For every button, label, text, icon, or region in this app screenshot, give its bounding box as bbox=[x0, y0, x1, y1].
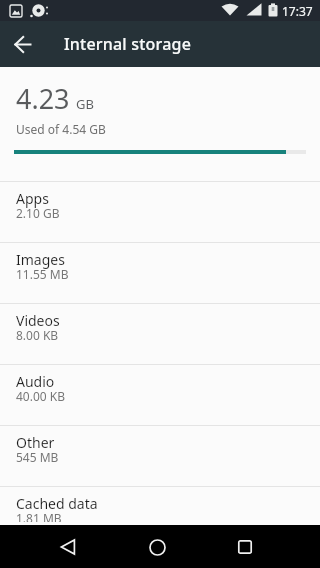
staticText: 8.00 KB bbox=[16, 327, 59, 343]
staticText: 4.23 bbox=[16, 80, 70, 117]
button[interactable] bbox=[53, 532, 83, 562]
staticText: Videos bbox=[16, 311, 60, 330]
button[interactable]: Cached data bbox=[0, 487, 320, 525]
staticText: Cached data bbox=[16, 494, 98, 513]
staticText: 545 MB bbox=[16, 449, 59, 465]
button[interactable]: Videos bbox=[0, 304, 320, 364]
staticText: 1.81 MB bbox=[16, 510, 62, 522]
button[interactable]: Images bbox=[0, 243, 320, 303]
button[interactable]: Apps bbox=[0, 182, 320, 242]
button[interactable]: Other bbox=[0, 426, 320, 486]
staticText: Internal storage bbox=[64, 33, 192, 55]
button[interactable] bbox=[230, 532, 260, 562]
button[interactable] bbox=[7, 28, 39, 60]
staticText: Images bbox=[16, 250, 65, 269]
staticText: Apps bbox=[16, 189, 49, 208]
button[interactable]: Audio bbox=[0, 365, 320, 425]
staticText: 17:37 bbox=[282, 3, 313, 19]
staticText: 11.55 MB bbox=[16, 266, 69, 282]
staticText: Other bbox=[16, 433, 55, 452]
button[interactable] bbox=[142, 532, 172, 562]
staticText: 2.10 GB bbox=[16, 205, 60, 221]
staticText: Used of 4.54 GB bbox=[16, 121, 106, 137]
staticText: Audio bbox=[16, 372, 55, 391]
staticText: 40.00 KB bbox=[16, 388, 66, 404]
staticText: GB bbox=[76, 95, 94, 113]
